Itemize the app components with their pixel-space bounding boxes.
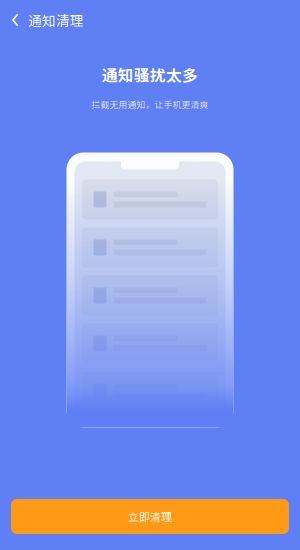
button[interactable]: 立即清理 — [11, 499, 289, 534]
button[interactable]: 返回 通知清理 — [0, 0, 94, 40]
staticText: 通知清理 — [28, 10, 84, 30]
staticText: 立即清理 — [128, 509, 172, 524]
staticText: 拦截无用通知，让手机更清爽 — [91, 98, 208, 110]
staticText: 通知骚扰太多 — [102, 63, 198, 86]
